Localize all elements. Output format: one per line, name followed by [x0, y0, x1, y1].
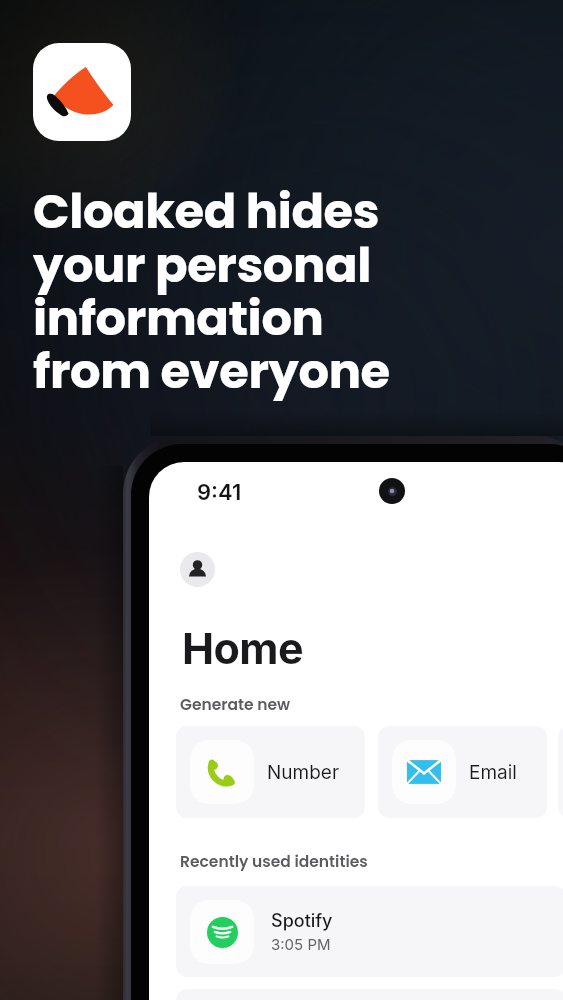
staticText: Spotify: [271, 910, 333, 932]
button[interactable]: Email: [378, 726, 547, 818]
staticText: Email: [469, 761, 517, 784]
staticText: Recently used identities: [180, 851, 368, 873]
staticText: 9:41: [197, 479, 242, 506]
staticText: Cloaked hides your personal information …: [33, 178, 390, 405]
staticText: Home: [182, 622, 303, 674]
button[interactable]: Cloaked app icon: [33, 43, 131, 141]
staticText: Generate new: [180, 694, 291, 716]
staticText: Number: [267, 761, 340, 784]
button[interactable]: Number: [176, 726, 365, 818]
staticText: 3:05 PM: [271, 935, 331, 953]
button[interactable]: Profile: [180, 552, 215, 587]
button[interactable]: Spotify: [176, 886, 563, 977]
